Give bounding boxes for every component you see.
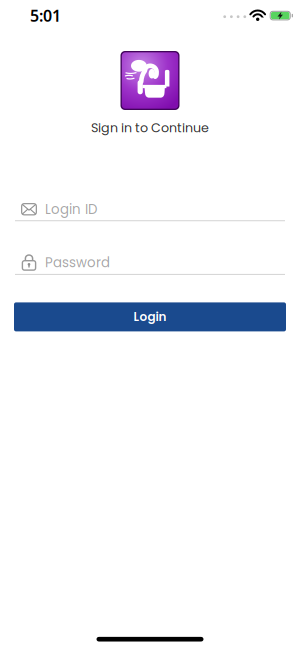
- button[interactable]: Login ID: [0, 203, 300, 221]
- staticText: Password: [45, 253, 110, 272]
- staticText: 5:01: [30, 5, 61, 26]
- staticText: Login: [133, 308, 166, 325]
- button[interactable]: Login: [14, 302, 286, 331]
- staticText: Login ID: [45, 200, 97, 219]
- button[interactable]: Password: [0, 253, 300, 275]
- staticText: Sign in to Continue: [91, 119, 209, 137]
